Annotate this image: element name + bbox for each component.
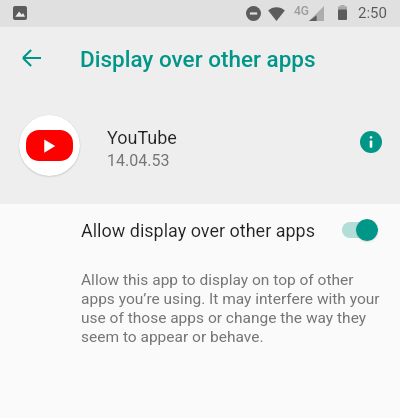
staticText: 4G: [294, 4, 309, 18]
button[interactable]: App info: [349, 120, 393, 164]
button[interactable]: Allow display over other apps, on: [342, 219, 378, 241]
staticText: Display over other apps: [80, 46, 316, 72]
button[interactable]: Allow display over other apps: [0, 204, 400, 256]
staticText: YouTube: [107, 127, 177, 148]
button[interactable]: Navigate up: [9, 36, 53, 80]
staticText: 2:50: [358, 4, 387, 22]
staticText: 14.04.53: [107, 151, 170, 170]
staticText: Allow display over other apps: [81, 220, 316, 241]
staticText: Allow this app to display on top of othe…: [81, 270, 381, 346]
